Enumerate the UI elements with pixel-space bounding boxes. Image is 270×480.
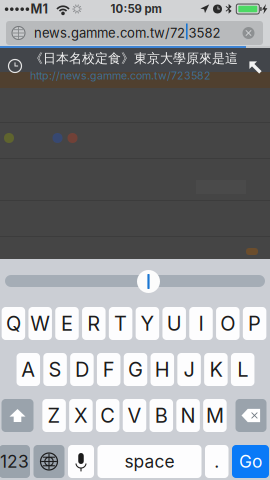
staticText: P: [248, 311, 261, 336]
staticText: A: [21, 357, 35, 382]
staticText: .: [214, 451, 219, 472]
staticText: S: [49, 357, 62, 382]
button[interactable]: W: [28, 307, 52, 340]
staticText: T: [114, 311, 127, 336]
staticText: J: [184, 357, 195, 382]
staticText: M1: [30, 1, 47, 17]
button[interactable]: H: [151, 353, 174, 386]
button[interactable]: B: [150, 399, 173, 432]
staticText: O: [220, 311, 235, 336]
button[interactable]: N: [176, 399, 200, 432]
button[interactable]: .: [205, 445, 228, 478]
staticText: U: [167, 311, 182, 336]
button[interactable]: Clear text: [242, 26, 255, 39]
staticText: V: [127, 403, 141, 428]
button[interactable]: X: [69, 399, 93, 432]
button[interactable]: F: [97, 353, 120, 386]
button[interactable]: C: [96, 399, 119, 432]
staticText: Z: [48, 403, 61, 428]
staticText: news.gamme.com.tw/72: [34, 25, 185, 41]
staticText: 123: [0, 451, 29, 472]
button[interactable]: space: [97, 445, 201, 478]
staticText: 3582: [188, 25, 220, 41]
button[interactable]: 《日本名校定食》東京大學原來是這: [0, 48, 270, 88]
button[interactable]: M: [203, 399, 227, 432]
staticText: C: [100, 403, 115, 428]
button[interactable]: T: [109, 307, 132, 340]
staticText: 《日本名校定食》東京大學原來是這: [30, 50, 238, 67]
button[interactable]: G: [124, 353, 147, 386]
button[interactable]: J: [177, 353, 201, 386]
button[interactable]: A: [16, 353, 40, 386]
staticText: X: [74, 403, 88, 428]
button[interactable]: Q: [2, 307, 25, 340]
button[interactable]: O: [216, 307, 240, 340]
staticText: M: [206, 403, 224, 428]
staticText: E: [61, 311, 73, 336]
button[interactable]: Y: [136, 307, 159, 340]
staticText: Go: [239, 451, 262, 472]
staticText: K: [209, 357, 222, 382]
button[interactable]: P: [243, 307, 266, 340]
staticText: F: [103, 357, 115, 382]
staticText: D: [75, 357, 89, 382]
staticText: R: [87, 311, 100, 336]
button[interactable]: Shift: [1, 399, 33, 432]
staticText: http://news.gamme.com.tw/723582: [30, 69, 211, 82]
staticText: I: [198, 311, 203, 336]
staticText: Y: [140, 311, 154, 336]
button[interactable]: Z: [42, 399, 66, 432]
staticText: L: [237, 357, 248, 382]
button[interactable]: Delete: [235, 399, 266, 432]
button[interactable]: U: [162, 307, 186, 340]
staticText: Q: [6, 311, 21, 336]
button[interactable]: S: [43, 353, 67, 386]
staticText: 10:59 pm: [110, 2, 161, 16]
button[interactable]: K: [204, 353, 228, 386]
staticText: space: [124, 451, 174, 472]
button[interactable]: R: [82, 307, 106, 340]
button[interactable]: D: [70, 353, 94, 386]
button[interactable]: Dictation: [68, 445, 94, 478]
button[interactable]: V: [123, 399, 146, 432]
staticText: N: [181, 403, 196, 428]
staticText: W: [30, 311, 50, 336]
staticText: H: [155, 357, 170, 382]
button[interactable]: L: [231, 353, 254, 386]
staticText: G: [128, 357, 143, 382]
button[interactable]: I: [189, 307, 213, 340]
button[interactable]: Go: [232, 445, 269, 478]
button[interactable]: Next keyboard: [33, 445, 64, 478]
staticText: B: [155, 403, 168, 428]
button[interactable]: 123: [0, 445, 30, 478]
button[interactable]: E: [55, 307, 79, 340]
